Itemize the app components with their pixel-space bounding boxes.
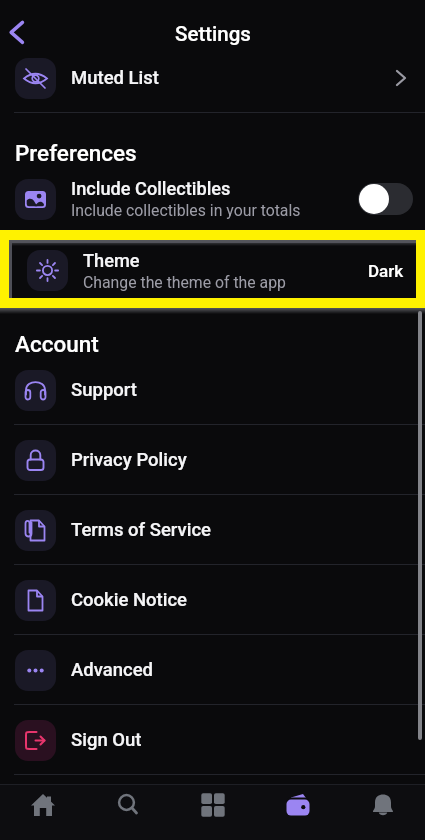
button[interactable]: Dashboard <box>170 785 255 825</box>
staticText: Privacy Policy <box>71 449 187 471</box>
button[interactable]: Search <box>85 785 170 825</box>
staticText: Support <box>71 379 137 401</box>
button[interactable]: Include Collectibles <box>0 164 425 234</box>
button[interactable]: Advanced <box>0 635 425 705</box>
button[interactable]: Cookie Notice <box>0 565 425 635</box>
staticText: Settings <box>175 22 251 46</box>
staticText: Cookie Notice <box>71 589 188 611</box>
staticText: Include Collectibles <box>71 178 231 199</box>
button[interactable]: Support <box>0 355 425 425</box>
button[interactable]: Privacy Policy <box>0 425 425 495</box>
button[interactable]: Theme <box>12 243 416 298</box>
button[interactable]: Wallet <box>255 785 340 825</box>
staticText: Terms of Service <box>71 519 211 541</box>
staticText: Account <box>15 331 99 357</box>
button[interactable]: Home <box>0 785 85 825</box>
staticText: Muted List <box>71 67 159 89</box>
button[interactable]: Sign Out <box>0 705 425 775</box>
staticText: Include collectibles in your totals <box>71 201 301 220</box>
button[interactable]: Muted List <box>0 43 425 113</box>
staticText: Change the theme of the app <box>83 273 286 292</box>
staticText: Sign Out <box>71 729 142 751</box>
staticText: Dark <box>368 261 404 281</box>
button[interactable] <box>358 183 413 215</box>
button[interactable]: Notifications <box>340 785 425 825</box>
button[interactable]: Terms of Service <box>0 495 425 565</box>
staticText: Preferences <box>15 140 137 166</box>
button[interactable]: Back <box>0 0 34 40</box>
staticText: Advanced <box>71 659 153 681</box>
staticText: Theme <box>83 250 140 271</box>
